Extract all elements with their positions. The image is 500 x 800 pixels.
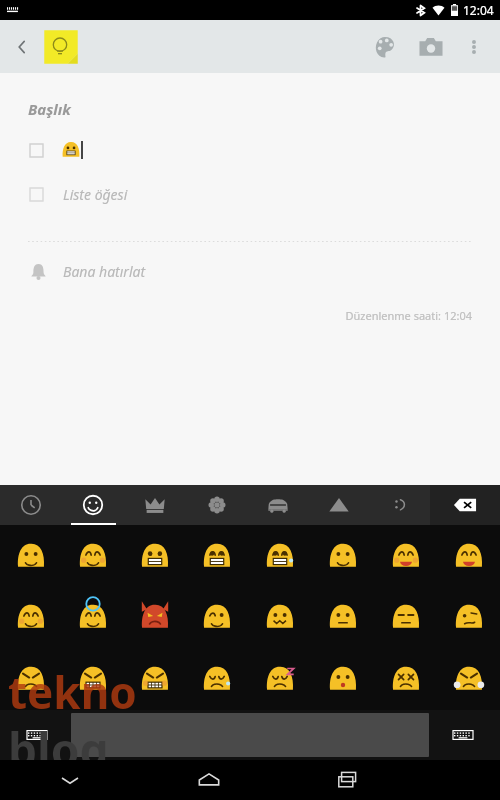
- button[interactable]: Emoji 17: [62, 648, 124, 710]
- button[interactable]: Emoji 16: [0, 648, 62, 710]
- button[interactable]: Keyboard: [429, 713, 497, 757]
- button[interactable]: [0, 135, 500, 165]
- button[interactable]: Backspace: [430, 485, 500, 525]
- button[interactable]: More options: [454, 27, 494, 67]
- button[interactable]: Emoji 14: [374, 586, 437, 648]
- button[interactable]: Emoji 21: [311, 648, 374, 710]
- button[interactable]: Switch keyboard: [3, 713, 71, 757]
- staticText: tekno: [8, 662, 137, 722]
- button[interactable]: Emoji 9: [62, 586, 124, 648]
- button[interactable]: Keep note: [42, 28, 80, 66]
- button[interactable]: Emoji 0: [0, 525, 62, 586]
- button[interactable]: recent: [0, 485, 62, 525]
- staticText: 12:04: [463, 2, 494, 18]
- button[interactable]: car: [247, 485, 308, 525]
- button[interactable]: Emoji 15: [437, 586, 500, 648]
- button[interactable]: Home: [139, 760, 278, 800]
- button[interactable]: Liste öğesi: [0, 179, 500, 209]
- button[interactable]: Emoji 10: [124, 586, 186, 648]
- staticText: Liste öğesi: [63, 185, 128, 204]
- button[interactable]: Emoji 18: [124, 648, 186, 710]
- button[interactable]: Emoji 22: [374, 648, 437, 710]
- staticText: Bana hatırlat: [63, 262, 146, 281]
- button[interactable]: Color palette: [362, 24, 408, 70]
- button[interactable]: flower: [186, 485, 247, 525]
- button[interactable]: Emoji 1: [62, 525, 124, 586]
- button[interactable]: Emoji 3: [186, 525, 248, 586]
- button[interactable]: Emoji 20: [248, 648, 311, 710]
- button[interactable]: Emoji 8: [0, 586, 62, 648]
- button[interactable]: Emoji 2: [124, 525, 186, 586]
- button[interactable]: Emoji 19: [186, 648, 248, 710]
- button[interactable]: Emoji 7: [437, 525, 500, 586]
- button[interactable]: Back: [2, 27, 42, 67]
- button[interactable]: emoji: [62, 485, 124, 525]
- button[interactable]: Emoji 11: [186, 586, 248, 648]
- button[interactable]: Emoji 4: [248, 525, 311, 586]
- button[interactable]: smiley: [369, 485, 430, 525]
- button[interactable]: Emoji 6: [374, 525, 437, 586]
- button[interactable]: Emoji 5: [311, 525, 374, 586]
- button[interactable]: tri: [308, 485, 369, 525]
- button[interactable]: crown: [124, 485, 186, 525]
- button[interactable]: Camera: [408, 24, 454, 70]
- button[interactable]: Recent apps: [278, 760, 417, 800]
- button[interactable]: Emoji 13: [311, 586, 374, 648]
- button[interactable]: Bana hatırlat: [0, 256, 500, 286]
- staticText: blog: [8, 718, 109, 768]
- button[interactable]: Hide keyboard: [0, 760, 139, 800]
- button[interactable]: Emoji 23: [437, 648, 500, 710]
- staticText: Düzenlenme saati: 12:04: [0, 308, 472, 323]
- staticText: Başlık: [28, 99, 71, 119]
- button[interactable]: Emoji 12: [248, 586, 311, 648]
